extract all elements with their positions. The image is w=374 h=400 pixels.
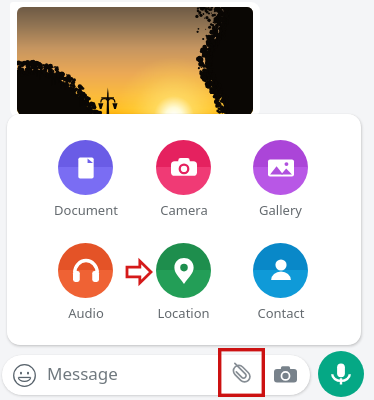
button[interactable]: Attach <box>228 360 255 387</box>
button[interactable]: Camera <box>140 140 227 220</box>
button[interactable]: Document <box>42 140 129 220</box>
staticText: Camera <box>160 201 208 219</box>
staticText: Location <box>157 304 210 322</box>
button[interactable]: Contact <box>237 243 324 323</box>
staticText: Audio <box>68 304 104 322</box>
button[interactable]: Voice message <box>318 351 364 397</box>
button[interactable]: Location <box>140 243 227 323</box>
staticText: Gallery <box>259 201 302 219</box>
button[interactable]: Emoji <box>13 364 36 387</box>
staticText: Message <box>47 362 118 385</box>
staticText: Contact <box>257 304 305 322</box>
staticText: Document <box>54 201 118 219</box>
button[interactable]: Gallery <box>237 140 324 220</box>
button[interactable]: Audio <box>42 243 129 323</box>
button[interactable]: Camera <box>274 364 297 387</box>
